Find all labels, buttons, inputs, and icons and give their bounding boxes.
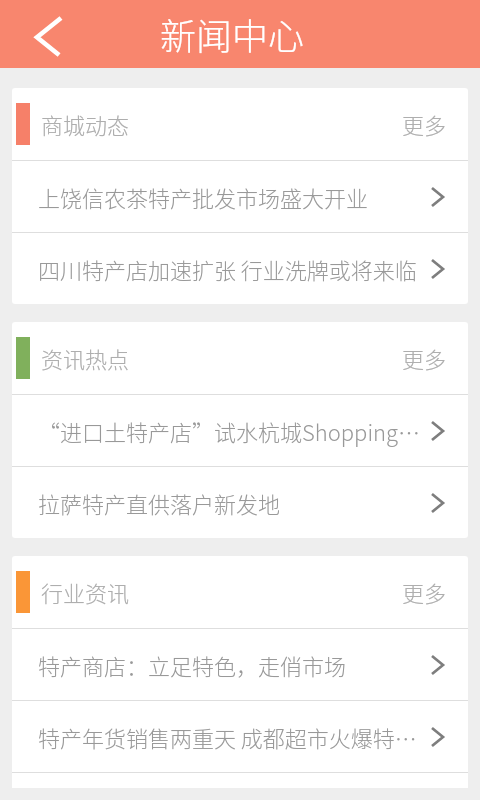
staticText: 更多	[402, 576, 447, 608]
staticText: 新闻中心	[160, 8, 305, 60]
button[interactable]: 四川特产店加速扩张 行业洗牌或将来临	[12, 233, 468, 304]
staticText: 四川特产店加速扩张 行业洗牌或将来临	[38, 253, 424, 285]
button[interactable]: 拉萨特产直供落户新发地	[12, 467, 468, 538]
button[interactable]: 行业资讯	[12, 556, 468, 628]
button[interactable]: 上饶信农茶特产批发市场盛大开业	[12, 161, 468, 232]
staticText: 上饶信农茶特产批发市场盛大开业	[38, 181, 424, 213]
button[interactable]: 特产商店：立足特色，走俏市场	[12, 629, 468, 700]
button[interactable]: 商城动态	[12, 88, 468, 160]
button[interactable]: 资讯热点	[12, 322, 468, 394]
staticText: 特产年货销售两重天 成都超市火爆特产店冷清	[38, 721, 424, 753]
staticText: 行业资讯	[41, 576, 130, 608]
staticText: 更多	[402, 342, 447, 374]
staticText: “进口土特产店”试水杭城Shopping Mall	[38, 415, 424, 447]
button[interactable]: “进口土特产店”试水杭城Shopping Mall	[12, 395, 468, 466]
button[interactable]: 特产年货销售两重天 成都超市火爆特产店冷清	[12, 701, 468, 772]
staticText: 更多	[402, 108, 447, 140]
staticText: 拉萨特产直供落户新发地	[38, 487, 424, 519]
button[interactable]: Back	[0, 0, 94, 68]
staticText: 商城动态	[41, 108, 130, 140]
staticText: 资讯热点	[41, 342, 130, 374]
staticText: 特产商店：立足特色，走俏市场	[38, 649, 424, 681]
